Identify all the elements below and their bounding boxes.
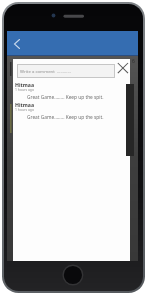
button[interactable]: Hitmaa	[13, 81, 130, 100]
button[interactable]: Write a comment ............	[17, 64, 115, 78]
staticText: Great Game........ Keep up the spit.	[27, 94, 104, 101]
button[interactable]	[116, 61, 130, 75]
staticText: 1 hours ago	[15, 87, 35, 92]
staticText: 6	[132, 58, 135, 65]
staticText: Great Game........ Keep up the spit.	[27, 114, 104, 121]
staticText: Write a comment ............	[20, 68, 71, 74]
staticText: 1 hours ago	[15, 107, 35, 112]
button[interactable]	[9, 35, 25, 52]
staticText: Hitmaa	[15, 81, 35, 88]
staticText: Hitmaa	[15, 101, 35, 108]
button[interactable]: Hitmaa	[13, 101, 130, 120]
